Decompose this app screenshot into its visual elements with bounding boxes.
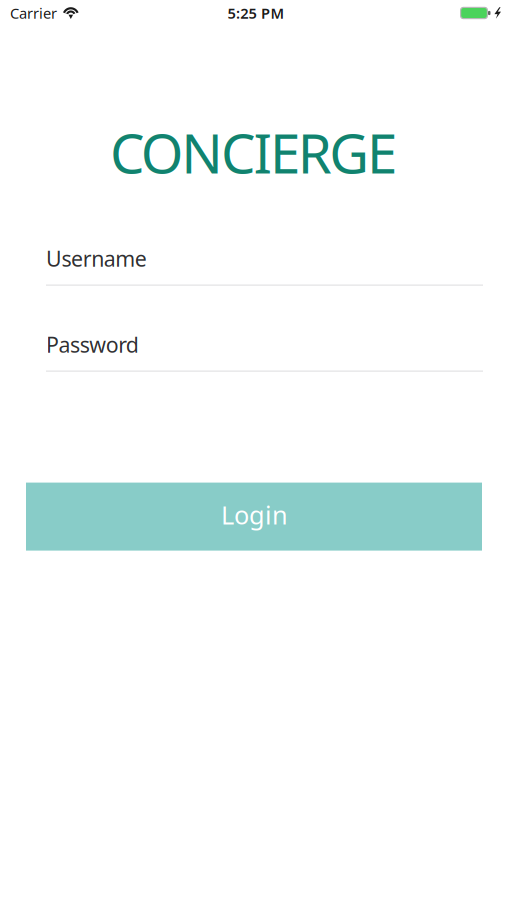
staticText: Login (221, 498, 288, 531)
staticText: Carrier (10, 3, 57, 23)
staticText: CONCIERGE (110, 116, 397, 189)
staticText: 5:25 PM (228, 3, 284, 23)
button[interactable]: Username (46, 247, 483, 286)
staticText: Username (46, 244, 147, 273)
button[interactable]: Password (46, 333, 483, 372)
staticText: Password (46, 330, 139, 359)
button[interactable]: Login (26, 483, 482, 551)
